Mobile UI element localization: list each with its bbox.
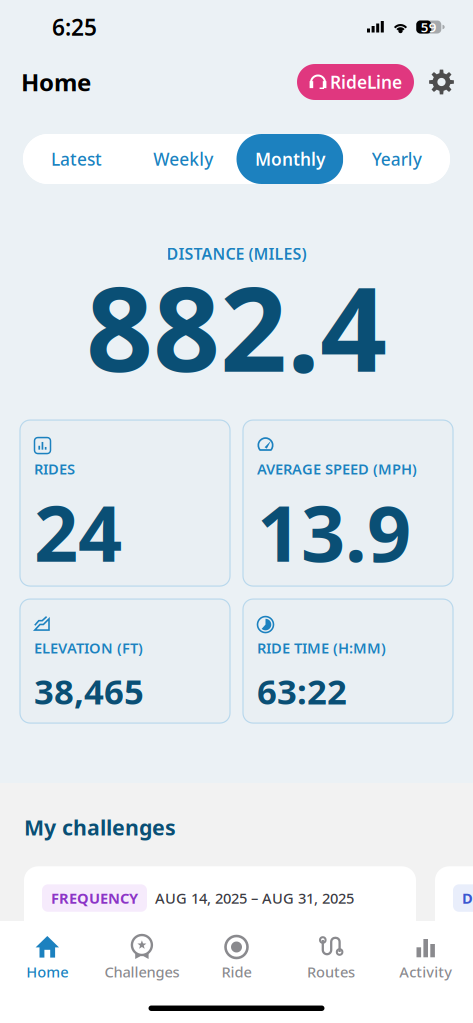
staticText: Latest <box>51 147 102 170</box>
staticText: 13.9 <box>257 480 411 583</box>
button[interactable]: Activity <box>378 921 473 983</box>
staticText: 63:22 <box>257 668 347 714</box>
button[interactable]: Home <box>0 921 95 983</box>
button[interactable]: RideLine <box>297 64 414 100</box>
staticText: RIDES <box>34 459 75 479</box>
staticText: 6:25 <box>52 12 97 42</box>
staticText: Yearly <box>372 147 422 170</box>
button[interactable]: Latest <box>23 134 130 184</box>
staticText: AVERAGE SPEED (MPH) <box>257 459 417 479</box>
staticText: 882.4 <box>86 248 387 404</box>
staticText: ELEVATION (FT) <box>34 638 143 658</box>
button[interactable]: Yearly <box>343 134 450 184</box>
staticText: DISTANCE <box>462 888 473 908</box>
button[interactable]: Ride <box>189 921 284 983</box>
staticText: DISTANCE (MILES) <box>166 243 306 264</box>
staticText: RIDE TIME (H:MM) <box>257 638 386 658</box>
button[interactable]: DISTANCE <box>435 866 473 996</box>
staticText: Routes <box>307 962 355 981</box>
staticText: Activity <box>399 962 452 981</box>
button[interactable]: Monthly <box>236 134 343 184</box>
staticText: AUG 14, 2025 – AUG 31, 2025 <box>155 888 354 908</box>
staticText: 24 <box>34 480 122 583</box>
staticText: RideLine <box>330 70 402 93</box>
button[interactable]: Settings <box>414 69 454 94</box>
staticText: Home <box>26 962 68 981</box>
staticText: 38,465 <box>34 668 144 714</box>
staticText: Ride <box>221 962 251 981</box>
staticText: FREQUENCY <box>51 888 138 908</box>
staticText: Challenges <box>104 962 179 981</box>
staticText: Home <box>21 66 91 98</box>
staticText: Weekly <box>153 147 213 170</box>
staticText: Monthly <box>255 147 325 170</box>
button[interactable]: FREQUENCY <box>24 866 416 996</box>
button[interactable]: Challenges <box>95 921 189 983</box>
staticText: 59 <box>421 18 437 36</box>
button[interactable]: Weekly <box>130 134 237 184</box>
button[interactable]: Routes <box>284 921 378 983</box>
staticText: My challenges <box>24 813 176 841</box>
